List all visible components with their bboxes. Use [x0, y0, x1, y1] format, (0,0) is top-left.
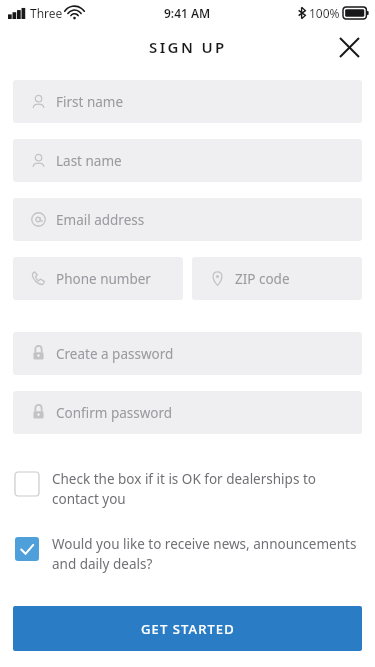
staticText: Phone number	[56, 270, 151, 288]
staticText: 100%	[309, 5, 340, 21]
staticText: GET STARTED	[141, 620, 235, 638]
staticText: First name	[56, 93, 124, 111]
button[interactable]: Create a password	[13, 332, 362, 375]
staticText: Confirm password	[56, 404, 173, 422]
button[interactable]: Email address	[13, 198, 362, 241]
button[interactable]: Last name	[13, 139, 362, 182]
button[interactable]: First name	[13, 80, 362, 123]
button[interactable]: Phone number	[13, 257, 183, 300]
staticText: ZIP code	[235, 270, 290, 288]
staticText: Check the box if it is OK for dealership…	[52, 470, 316, 488]
button[interactable]: Check the box if it is OK for dealership…	[15, 470, 360, 508]
staticText: SIGN UP	[149, 37, 227, 57]
button[interactable]: ZIP code	[192, 257, 362, 300]
button[interactable]: Close	[331, 29, 367, 65]
staticText: Email address	[56, 211, 145, 229]
staticText: Create a password	[56, 345, 174, 363]
button[interactable]: Would you like to receive news, announce…	[15, 535, 360, 573]
staticText: Would you like to receive news, announce…	[52, 535, 357, 553]
staticText: and daily deals?	[52, 555, 153, 573]
staticText: contact you	[52, 490, 126, 508]
staticText: 9:41 AM	[164, 5, 211, 21]
staticText: Last name	[56, 152, 122, 170]
button[interactable]: Confirm password	[13, 391, 362, 434]
staticText: Three	[30, 5, 63, 21]
button[interactable]: GET STARTED	[13, 606, 362, 651]
